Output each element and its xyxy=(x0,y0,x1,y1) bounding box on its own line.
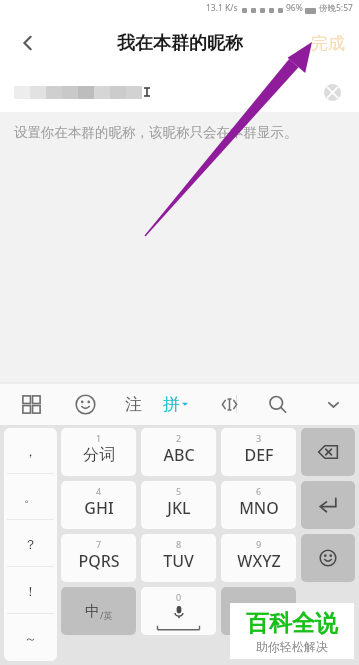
button[interactable]: 2 xyxy=(141,428,216,476)
staticText: ～ xyxy=(24,630,37,646)
button[interactable]: 8 xyxy=(141,534,216,582)
button[interactable]: Emoji xyxy=(68,387,102,421)
staticText: 。 xyxy=(24,489,37,505)
staticText: 分词 xyxy=(83,445,115,465)
button[interactable]: Keyboard layouts xyxy=(14,387,48,421)
button[interactable]: Symbols xyxy=(221,587,296,635)
staticText: 设置你在本群的昵称，该昵称只会在本群显示。 xyxy=(14,124,298,141)
staticText: 5 xyxy=(176,485,182,497)
staticText: 中 xyxy=(85,602,100,621)
button[interactable]: 完成 xyxy=(297,14,359,72)
button[interactable]: Backspace xyxy=(301,428,355,476)
staticText: ， xyxy=(24,443,37,459)
button[interactable]: Search xyxy=(260,387,294,421)
button[interactable]: 。 xyxy=(4,474,57,520)
staticText: 傍晚5:57 xyxy=(319,2,353,14)
button[interactable]: 1 xyxy=(61,428,136,476)
staticText: 4 xyxy=(96,485,102,497)
staticText: ABC xyxy=(163,444,195,466)
staticText: GHI xyxy=(84,497,114,519)
staticText: 我在本群的昵称 xyxy=(117,32,243,55)
button[interactable]: ！ xyxy=(4,567,57,614)
button[interactable]: Move cursor xyxy=(212,387,246,421)
staticText: 8 xyxy=(176,538,182,550)
staticText: ？ xyxy=(24,536,37,552)
staticText: JKL xyxy=(167,497,191,519)
staticText: 拼 xyxy=(163,394,180,415)
button[interactable]: Back xyxy=(0,14,56,72)
staticText: /英 xyxy=(100,609,113,621)
button[interactable]: 7 xyxy=(61,534,136,582)
button[interactable]: 9 xyxy=(221,534,296,582)
button[interactable]: 3 xyxy=(221,428,296,476)
staticText: PQRS xyxy=(78,550,120,572)
staticText: ！ xyxy=(24,583,37,599)
button[interactable]: 中 xyxy=(61,587,136,635)
button[interactable]: 4 xyxy=(61,481,136,529)
staticText: MNO xyxy=(239,497,279,519)
button[interactable]: Emoji xyxy=(301,534,355,582)
button[interactable]: 拼 xyxy=(163,383,188,425)
button[interactable]: 6 xyxy=(221,481,296,529)
button[interactable]: 5 xyxy=(141,481,216,529)
button[interactable]: ？ xyxy=(4,520,57,567)
staticText: 完成 xyxy=(311,33,345,54)
staticText: 3 xyxy=(256,432,262,444)
button[interactable]: 注 xyxy=(116,387,150,421)
button[interactable]: Clear xyxy=(317,77,347,107)
button[interactable]: ～ xyxy=(4,614,57,661)
staticText: 注 xyxy=(125,394,142,415)
staticText: 13.1 K/s xyxy=(206,2,238,14)
staticText: 0 xyxy=(176,591,182,603)
staticText: DEF xyxy=(244,444,274,466)
button[interactable]: Enter xyxy=(301,481,355,529)
button[interactable]: Space / voice input xyxy=(141,587,216,635)
staticText: 6 xyxy=(256,485,262,497)
staticText: 百科全说 xyxy=(246,609,338,638)
staticText: 助你轻松解决 xyxy=(256,639,328,654)
staticText: 1 xyxy=(96,432,102,444)
staticText: 9 xyxy=(256,538,262,550)
staticText: 96% xyxy=(286,2,303,14)
button[interactable]: Hide keyboard xyxy=(316,387,350,421)
staticText: 7 xyxy=(96,538,102,550)
staticText: 2 xyxy=(176,432,182,444)
staticText: TUV xyxy=(163,550,194,572)
button[interactable]: ， xyxy=(4,428,57,474)
staticText: WXYZ xyxy=(237,550,281,572)
